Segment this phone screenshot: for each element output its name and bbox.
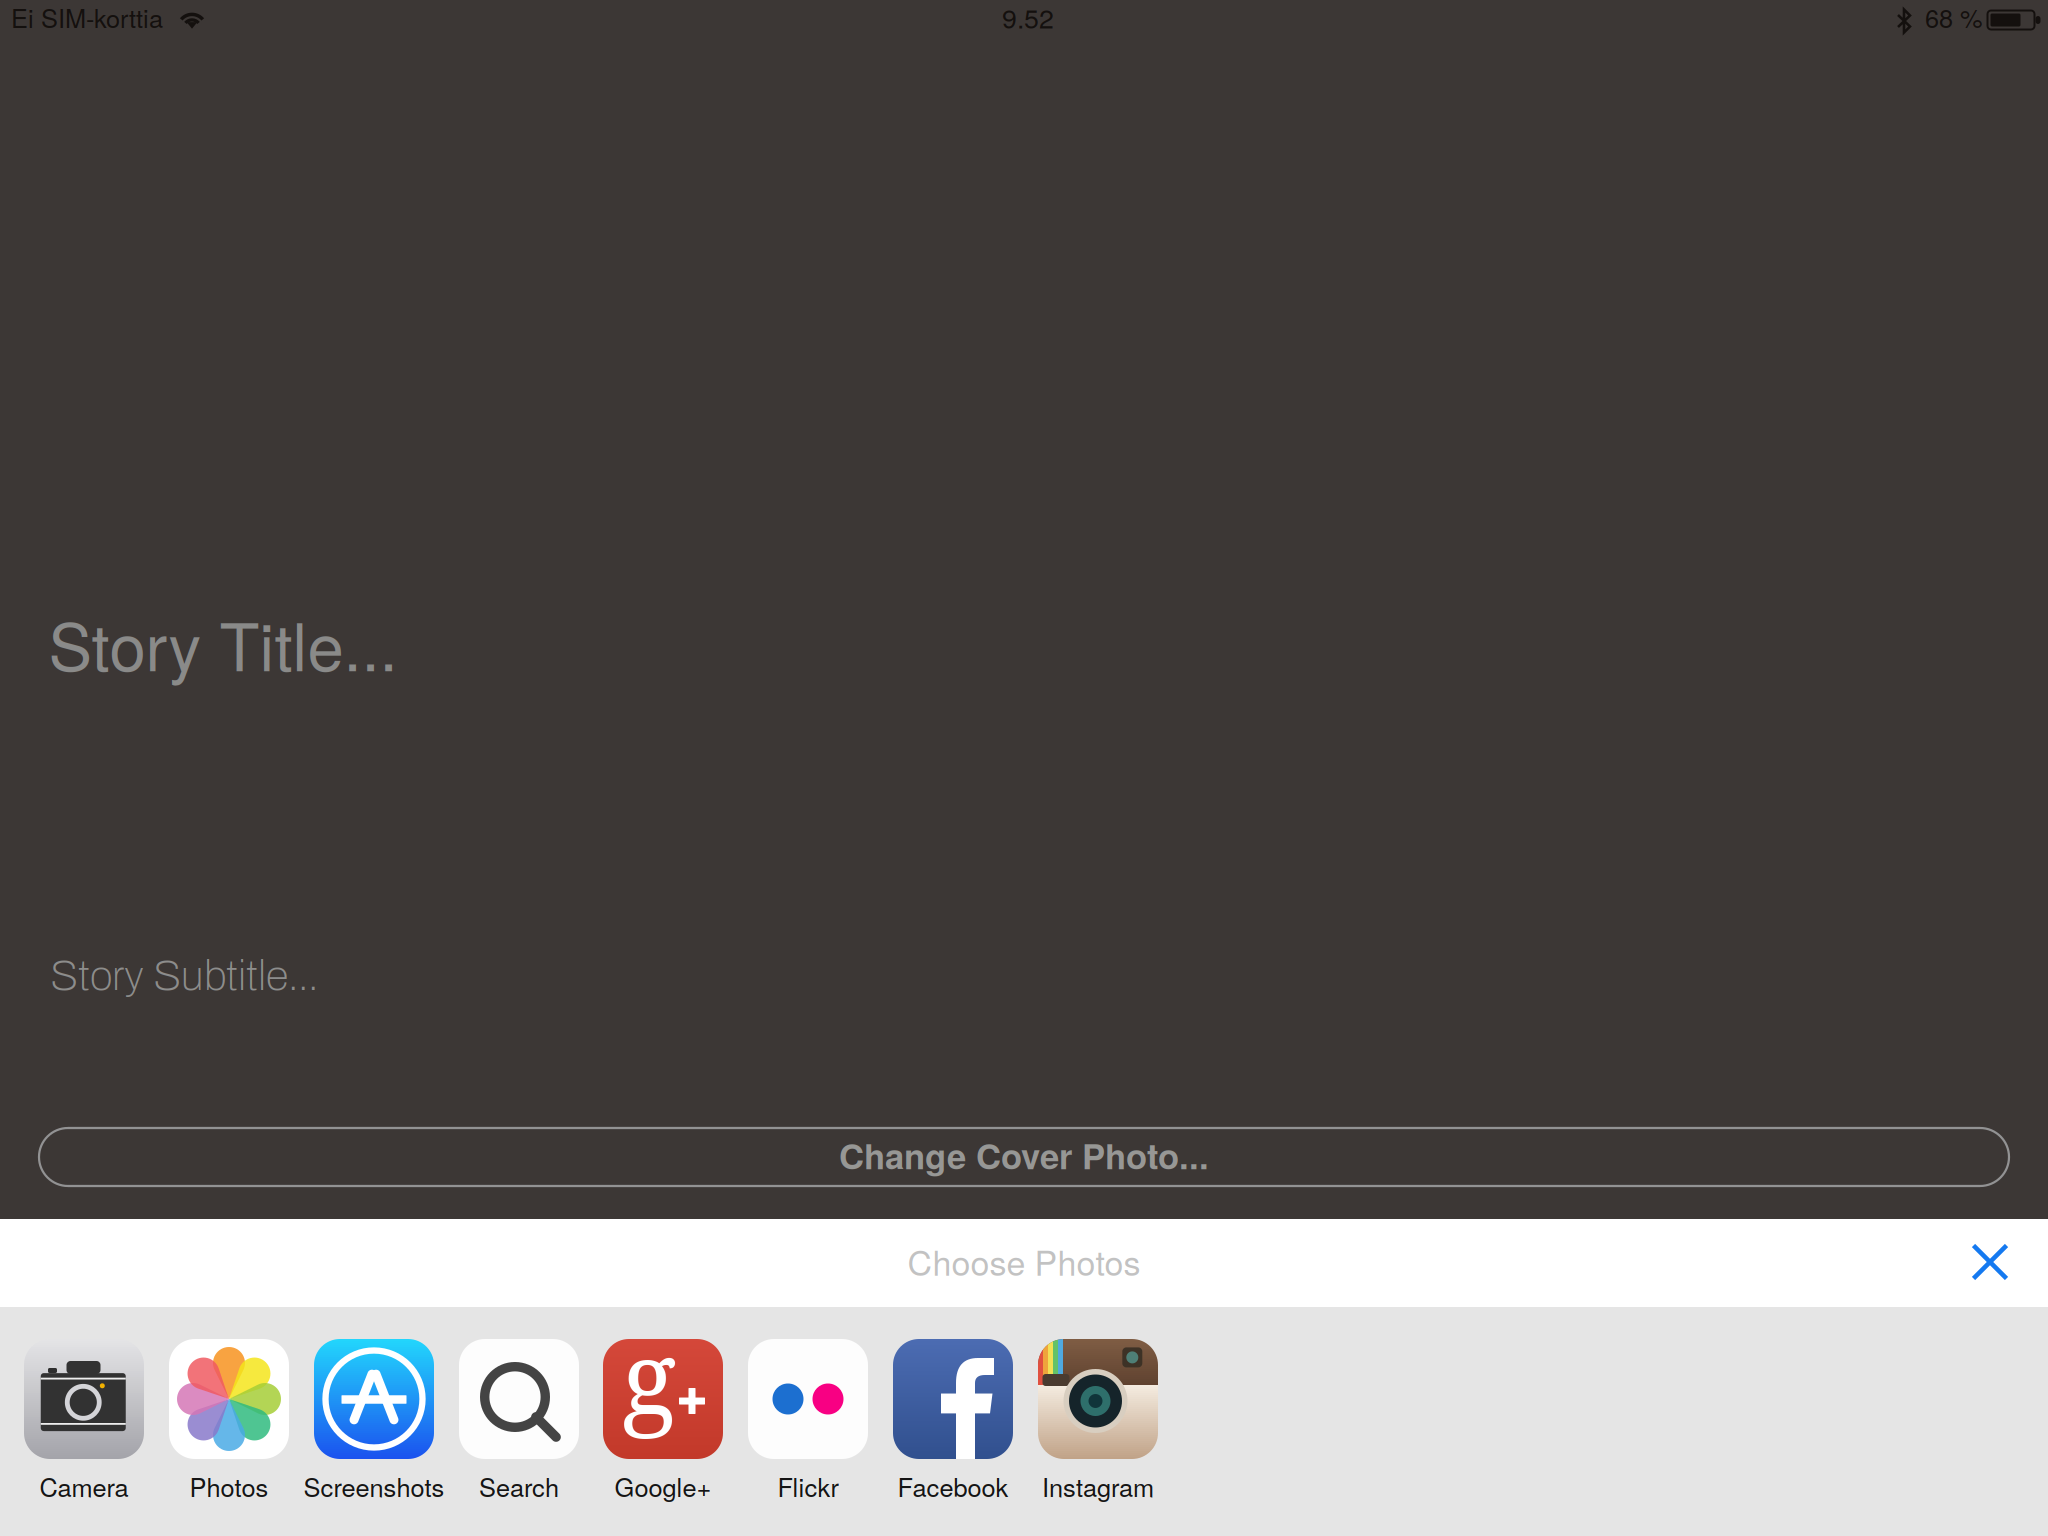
button[interactable]: Close	[1954, 1226, 2026, 1298]
staticText: Story Title...	[48, 596, 397, 690]
button[interactable]: Search	[447, 1307, 591, 1536]
button[interactable]: Screenshots	[302, 1307, 446, 1536]
button[interactable]: Photos	[157, 1307, 301, 1536]
staticText: Choose Photos	[907, 1237, 1140, 1285]
staticText: Photos	[189, 1468, 268, 1504]
staticText: g	[622, 1307, 677, 1445]
staticText: Camera	[39, 1468, 128, 1504]
button[interactable]: Camera	[12, 1307, 156, 1536]
staticText: Search	[479, 1468, 559, 1504]
staticText: Ei SIM-korttia	[11, 0, 163, 35]
button[interactable]: Facebook	[881, 1307, 1025, 1536]
staticText: 9.52	[1002, 0, 1054, 36]
staticText: Flickr	[777, 1468, 838, 1504]
staticText: Change Cover Photo...	[839, 1130, 1209, 1180]
staticText: Facebook	[897, 1468, 1008, 1504]
staticText: Instagram	[1042, 1468, 1154, 1504]
staticText: Story Subtitle...	[50, 953, 318, 999]
staticText: Screenshots	[303, 1468, 444, 1504]
staticText: Google+	[614, 1468, 711, 1504]
button[interactable]: Change Cover Photo...	[39, 1128, 2009, 1186]
staticText: 68 %	[1925, 0, 1983, 35]
button[interactable]: Instagram	[1026, 1307, 1170, 1536]
button[interactable]: Flickr	[736, 1307, 880, 1536]
button[interactable]: g	[591, 1307, 735, 1536]
